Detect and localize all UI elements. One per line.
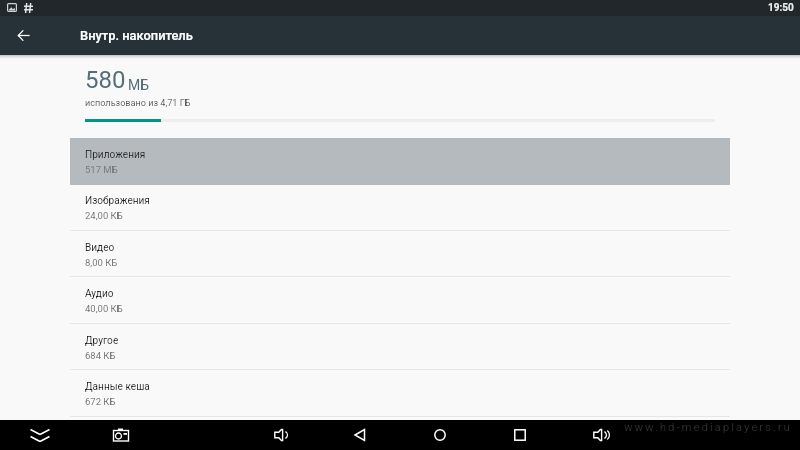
button[interactable]: Видео: [70, 231, 730, 278]
button[interactable]: Back: [345, 420, 375, 450]
staticText: Данные кеша: [85, 381, 150, 393]
staticText: Аудио: [85, 288, 114, 300]
staticText: 19:50: [768, 2, 794, 14]
staticText: Внутр. накопитель: [80, 28, 193, 43]
button[interactable]: Recent apps: [505, 420, 535, 450]
button[interactable]: Другое: [70, 324, 730, 371]
staticText: 672 КБ: [85, 396, 116, 407]
staticText: www.hd-mediaplayers.ru: [624, 420, 792, 433]
staticText: использовано из 4,71 ГБ: [85, 98, 191, 109]
staticText: 40,00 КБ: [85, 303, 123, 314]
button[interactable]: Home: [425, 420, 455, 450]
button[interactable]: Изображения: [70, 184, 730, 231]
staticText: 684 КБ: [85, 350, 116, 361]
button[interactable]: Volume up: [585, 420, 615, 450]
button[interactable]: Volume down: [265, 420, 295, 450]
button[interactable]: Приложения: [70, 138, 730, 185]
staticText: 580: [85, 66, 126, 94]
staticText: МБ: [128, 77, 150, 93]
staticText: Приложения: [85, 149, 146, 161]
staticText: 24,00 КБ: [85, 210, 123, 221]
button[interactable]: Back: [4, 16, 42, 54]
button[interactable]: Screenshot: [106, 420, 136, 450]
button[interactable]: Данные кеша: [70, 370, 730, 417]
staticText: Видео: [85, 242, 115, 254]
staticText: Изображения: [85, 195, 150, 207]
button[interactable]: Аудио: [70, 277, 730, 324]
staticText: Другое: [85, 335, 119, 347]
staticText: 517 МБ: [85, 164, 118, 175]
button[interactable]: Expand: [25, 420, 55, 450]
staticText: 8,00 КБ: [85, 257, 118, 268]
